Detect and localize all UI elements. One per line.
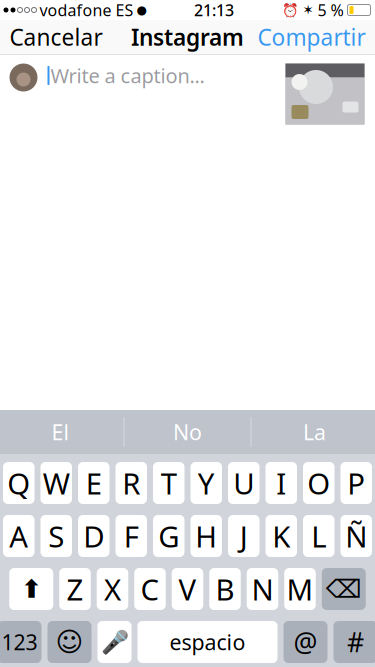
staticText: F (124, 516, 139, 555)
button[interactable]: Cancelar (0, 20, 114, 54)
staticText: T (161, 463, 177, 502)
staticText: Compartir (257, 22, 365, 52)
staticText: Q (7, 463, 30, 502)
button[interactable]: espacio (137, 621, 277, 663)
staticText: I (276, 463, 286, 502)
button[interactable]: La (251, 410, 375, 454)
staticText: espacio (169, 628, 245, 656)
button[interactable]: Emoji (47, 621, 91, 663)
staticText: # (347, 624, 364, 660)
button[interactable]: B (209, 568, 241, 610)
button[interactable]: P (340, 462, 372, 504)
button[interactable]: C (134, 568, 166, 610)
staticText: Cancelar (9, 22, 102, 52)
staticText: La (303, 418, 326, 446)
button[interactable]: R (115, 462, 147, 504)
staticText: D (83, 516, 104, 555)
staticText: H (195, 516, 217, 555)
staticText: Z (66, 569, 83, 608)
button[interactable]: A (3, 515, 34, 557)
staticText: No (173, 418, 202, 446)
button[interactable]: O (303, 462, 334, 504)
staticText: 21:13 (194, 0, 234, 21)
button[interactable]: 123 (0, 621, 41, 663)
button[interactable]: T (153, 462, 184, 504)
staticText: R (122, 463, 140, 502)
staticText: J (240, 516, 248, 555)
staticText: 🎤 (100, 629, 128, 655)
button[interactable]: G (153, 515, 184, 557)
button[interactable]: Ñ (340, 515, 372, 557)
button[interactable]: J (228, 515, 259, 557)
button[interactable]: H (190, 515, 222, 557)
staticText: Y (198, 463, 215, 502)
staticText: @ (293, 624, 317, 660)
button[interactable]: Q (3, 462, 34, 504)
button[interactable]: D (78, 515, 109, 557)
staticText: ⬆ (21, 575, 42, 603)
staticText: 5 % (317, 0, 343, 21)
button[interactable]: # (333, 621, 375, 663)
button[interactable]: No (124, 410, 250, 454)
staticText: 123 (1, 628, 37, 656)
button[interactable]: F (115, 515, 147, 557)
staticText: N (251, 569, 273, 608)
button[interactable]: S (40, 515, 72, 557)
button[interactable]: El (0, 410, 123, 454)
staticText: X (104, 569, 121, 608)
staticText: L (311, 516, 326, 555)
staticText: S (48, 516, 64, 555)
staticText: ⏰ (281, 2, 298, 18)
staticText: vodafone ES (39, 0, 133, 21)
button[interactable]: K (265, 515, 297, 557)
button[interactable]: Write a caption (47, 63, 275, 87)
button[interactable]: Z (59, 568, 91, 610)
button[interactable]: X (97, 568, 128, 610)
button[interactable]: Compartir (245, 20, 375, 54)
button[interactable]: I (265, 462, 297, 504)
button[interactable]: L (303, 515, 334, 557)
staticText: B (215, 569, 234, 608)
button[interactable]: Dictation (97, 621, 131, 663)
staticText: K (272, 516, 290, 555)
staticText: E (86, 463, 102, 502)
button[interactable]: U (228, 462, 259, 504)
staticText: M (286, 569, 313, 608)
staticText: Instagram (131, 22, 244, 52)
button[interactable]: @ (283, 621, 327, 663)
button[interactable]: W (40, 462, 72, 504)
staticText: Ñ (345, 516, 367, 555)
button[interactable]: Y (190, 462, 222, 504)
staticText: W (43, 463, 70, 502)
staticText: P (347, 463, 365, 502)
staticText: G (158, 516, 179, 555)
button[interactable]: Shift (9, 568, 53, 610)
staticText: ☺ (55, 627, 83, 657)
staticText: A (9, 516, 28, 555)
button[interactable]: N (247, 568, 278, 610)
staticText: ⌫ (326, 575, 362, 603)
staticText: V (178, 569, 196, 608)
button[interactable]: M (284, 568, 316, 610)
staticText: ● (136, 3, 146, 17)
staticText: O (307, 463, 330, 502)
staticText: ✶ (302, 2, 313, 17)
staticText: El (51, 418, 69, 446)
staticText: C (140, 569, 159, 608)
button[interactable]: V (172, 568, 203, 610)
button[interactable]: E (78, 462, 109, 504)
staticText: Write a caption... (50, 62, 204, 89)
button[interactable]: Delete (322, 568, 366, 610)
staticText: U (233, 463, 254, 502)
